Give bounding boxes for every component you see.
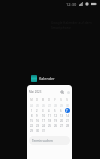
button[interactable]: 3	[40, 108, 46, 113]
staticText: 28	[54, 104, 57, 108]
staticText: D	[34, 98, 40, 102]
staticText: 28	[66, 124, 69, 128]
staticText: 19	[54, 119, 57, 123]
button[interactable]: 31	[40, 128, 46, 133]
button[interactable]: 25	[46, 123, 52, 128]
button[interactable]: 30	[64, 103, 70, 108]
staticText: M	[40, 98, 46, 102]
button[interactable]: 14	[64, 113, 70, 118]
staticText: 18	[48, 119, 51, 123]
staticText: 12	[54, 114, 57, 118]
button[interactable]: 11	[46, 113, 52, 118]
button[interactable]: 27	[58, 123, 64, 128]
button[interactable]: 1	[29, 108, 34, 113]
button[interactable]: 24	[29, 103, 34, 108]
staticText: 29	[30, 129, 33, 133]
staticText: M	[29, 98, 34, 102]
button[interactable]: 5	[52, 108, 58, 113]
staticText: 17	[42, 119, 45, 123]
staticText: 21	[66, 119, 69, 123]
button[interactable]: 15	[29, 118, 34, 123]
button[interactable]: 12	[52, 113, 58, 118]
button[interactable]: 21	[64, 118, 70, 123]
button[interactable]: 20	[58, 118, 64, 123]
staticText: D	[46, 98, 52, 102]
staticText: 12:30	[66, 2, 77, 7]
staticText: Mai 2023	[29, 90, 42, 94]
staticText: 2	[36, 109, 38, 113]
staticText: 10	[42, 114, 45, 118]
staticText: 20	[60, 119, 63, 123]
staticText: 15	[30, 119, 33, 123]
staticText: 24	[30, 104, 33, 108]
button[interactable]: Termin suchen	[29, 136, 70, 145]
staticText: 1	[31, 109, 33, 113]
staticText: 3	[42, 109, 44, 113]
button[interactable]: 26	[40, 103, 46, 108]
button[interactable]: Kalender	[31, 75, 55, 82]
staticText: S	[64, 98, 70, 102]
button[interactable]: Suche	[60, 90, 64, 94]
button[interactable]: 23	[34, 123, 40, 128]
staticText: 27	[60, 124, 63, 128]
staticText: Termin suchen	[32, 139, 53, 143]
button[interactable]: 26	[52, 123, 58, 128]
button[interactable]: 8	[29, 113, 34, 118]
staticText: 26	[54, 124, 57, 128]
button[interactable]: Profil	[67, 91, 70, 94]
staticText: 7	[66, 109, 68, 113]
button[interactable]: 2	[34, 108, 40, 113]
button[interactable]: 10	[40, 113, 46, 118]
staticText: 9	[36, 114, 38, 118]
button[interactable]: 28	[52, 103, 58, 108]
staticText: 13	[60, 114, 63, 118]
staticText: Kalender	[39, 76, 55, 81]
button[interactable]: 25	[34, 103, 40, 108]
button[interactable]: 4	[46, 108, 52, 113]
staticText: 4	[48, 109, 50, 113]
staticText: 11	[48, 114, 51, 118]
button[interactable]: 24	[40, 123, 46, 128]
staticText: 5	[54, 109, 56, 113]
staticText: 30	[66, 104, 69, 108]
button[interactable]: 28	[64, 123, 70, 128]
button[interactable]: 30	[34, 128, 40, 133]
button[interactable]: 29	[29, 128, 34, 133]
button[interactable]: 6	[58, 108, 64, 113]
staticText: 6	[60, 109, 62, 113]
staticText: 30	[36, 129, 39, 133]
button[interactable]: 27	[46, 103, 52, 108]
staticText: F	[52, 98, 58, 102]
button[interactable]: 19	[52, 118, 58, 123]
staticText: 31	[42, 129, 45, 133]
button[interactable]: 18	[46, 118, 52, 123]
button[interactable]: 29	[58, 103, 64, 108]
staticText: 23	[36, 124, 39, 128]
staticText: 29	[60, 104, 63, 108]
staticText: 24	[42, 124, 45, 128]
button[interactable]: 22	[29, 123, 34, 128]
button[interactable]: 13	[58, 113, 64, 118]
staticText: S	[58, 98, 64, 102]
button[interactable]: 17	[40, 118, 46, 123]
staticText: 25	[36, 104, 39, 108]
staticText: 25	[48, 124, 51, 128]
button[interactable]: 9	[34, 113, 40, 118]
staticText: 8	[31, 114, 33, 118]
staticText: 14	[66, 114, 69, 118]
button[interactable]: 16	[34, 118, 40, 123]
staticText: 27	[48, 104, 51, 108]
staticText: 16	[36, 119, 39, 123]
button[interactable]: 7	[64, 108, 70, 113]
staticText: 26	[42, 104, 45, 108]
staticText: 22	[30, 124, 33, 128]
